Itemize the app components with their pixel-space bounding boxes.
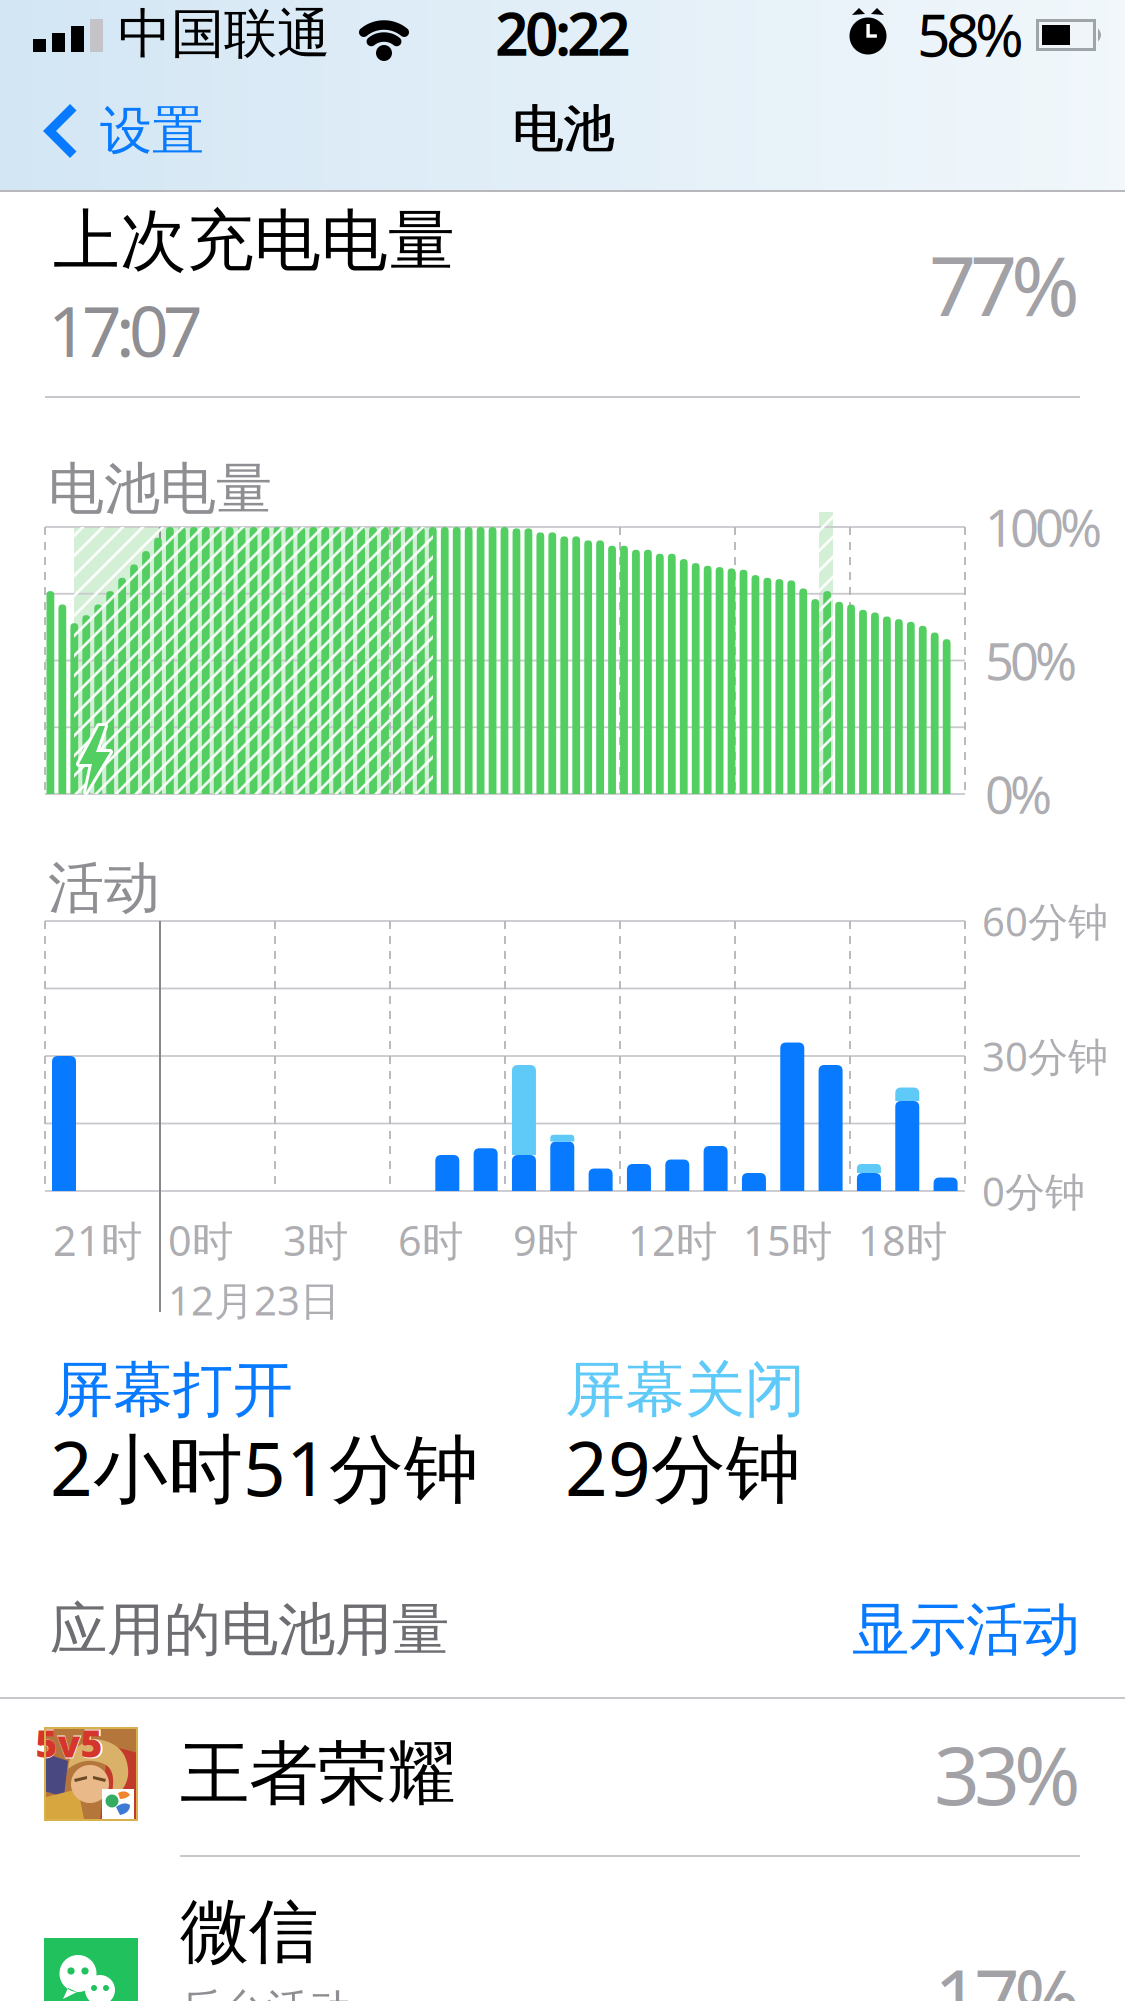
staticText: 显示活动 bbox=[852, 1595, 1080, 1665]
staticText: 18时 bbox=[858, 1213, 947, 1267]
staticText: 21时 bbox=[53, 1213, 142, 1267]
staticText: 0分钟 bbox=[982, 1164, 1085, 1217]
staticText: 12月23日 bbox=[168, 1273, 340, 1326]
staticText: 17% bbox=[934, 1944, 1080, 2001]
staticText: 活动 bbox=[48, 854, 160, 922]
staticText: 屏幕关闭 bbox=[565, 1353, 805, 1427]
staticText: 58% bbox=[917, 0, 1024, 73]
staticText: 9时 bbox=[513, 1213, 578, 1267]
button[interactable]: 5v5 bbox=[0, 1699, 1125, 1855]
staticText: 5v5 bbox=[35, 1718, 102, 1768]
staticText: 屏幕打开 bbox=[53, 1353, 293, 1427]
button[interactable]: 微信 bbox=[0, 1857, 1125, 2001]
staticText: 应用的电池用量 bbox=[50, 1595, 449, 1665]
staticText: 中国联通 bbox=[118, 1, 330, 67]
staticText: 50% bbox=[985, 627, 1077, 694]
staticText: 后台活动 bbox=[180, 1984, 352, 2001]
staticText: 上次充电电量 bbox=[53, 200, 455, 282]
staticText: 6时 bbox=[398, 1213, 463, 1267]
staticText: 17:07 bbox=[48, 284, 203, 376]
staticText: 100% bbox=[985, 493, 1102, 561]
staticText: 29分钟 bbox=[565, 1417, 801, 1517]
button[interactable]: 显示活动 bbox=[780, 1595, 1080, 1665]
staticText: 60分钟 bbox=[982, 894, 1108, 947]
staticText: 12时 bbox=[628, 1213, 717, 1267]
staticText: 微信 bbox=[180, 1889, 318, 1975]
staticText: 5v5 bbox=[34, 1716, 104, 1769]
button[interactable]: 设置 bbox=[30, 86, 290, 176]
staticText: 电池 bbox=[512, 98, 614, 160]
staticText: 0% bbox=[985, 760, 1052, 828]
staticText: 3时 bbox=[283, 1213, 348, 1267]
staticText: 王者荣耀 bbox=[180, 1731, 456, 1817]
staticText: 77% bbox=[929, 229, 1080, 339]
staticText: 电池 bbox=[513, 98, 615, 160]
staticText: 设置 bbox=[100, 99, 204, 163]
staticText: 0时 bbox=[168, 1213, 233, 1267]
staticText: 33% bbox=[934, 1721, 1080, 1827]
staticText: 30分钟 bbox=[982, 1029, 1108, 1082]
staticText: 15时 bbox=[743, 1213, 832, 1267]
staticText: 20:22 bbox=[495, 0, 631, 72]
staticText: 2小时51分钟 bbox=[50, 1417, 479, 1517]
staticText: 电池电量 bbox=[48, 455, 272, 523]
